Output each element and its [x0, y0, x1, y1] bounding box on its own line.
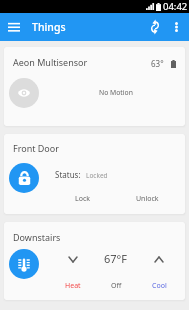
button[interactable]: Unlock [131, 191, 164, 207]
button[interactable]: Cool [147, 278, 172, 294]
button[interactable]: Open navigation menu [3, 16, 25, 38]
button[interactable]: Thermostat [9, 249, 39, 279]
staticText: Things [32, 20, 66, 34]
staticText: 04:42 [163, 0, 188, 13]
staticText: 63° [151, 58, 164, 69]
staticText: Unlock [136, 194, 159, 204]
button[interactable]: Heat [60, 278, 86, 294]
button[interactable]: Increase temperature [150, 250, 168, 268]
staticText: Status: [55, 169, 81, 180]
staticText: Downstairs [13, 231, 61, 243]
staticText: Front Door [13, 142, 59, 154]
button[interactable]: Motion sensor [9, 78, 39, 108]
button[interactable]: Lock toggle [9, 163, 39, 193]
staticText: Locked [86, 171, 108, 180]
staticText: Off [111, 281, 122, 291]
staticText: Heat [65, 281, 81, 291]
button[interactable]: Decrease temperature [64, 250, 82, 268]
staticText: Lock [75, 194, 91, 204]
button[interactable]: Lock [70, 191, 96, 207]
staticText: 67°F [104, 251, 128, 266]
button[interactable]: More options [166, 17, 186, 37]
button[interactable]: Off [106, 278, 127, 294]
staticText: Aeon Multisensor [13, 56, 88, 68]
staticText: No Motion [99, 88, 133, 97]
staticText: Cool [152, 281, 167, 291]
button[interactable]: Refresh [144, 16, 166, 38]
